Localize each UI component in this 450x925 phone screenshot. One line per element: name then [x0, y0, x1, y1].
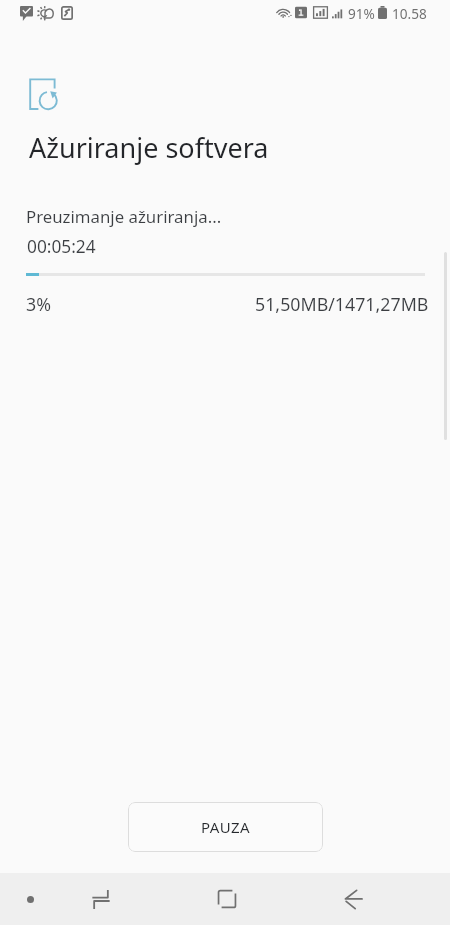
staticText: 10.58 — [392, 4, 427, 23]
staticText: Preuzimanje ažuriranja... — [26, 205, 222, 228]
button[interactable]: Back — [327, 873, 379, 925]
staticText: Ažuriranje softvera — [29, 129, 269, 166]
staticText: 91% — [348, 4, 375, 23]
button[interactable]: PAUZA — [128, 802, 323, 852]
staticText: 00:05:24 — [27, 235, 96, 259]
staticText: 51,50MB/1471,27MB — [255, 292, 429, 316]
staticText: PAUZA — [201, 817, 251, 837]
staticText: 3% — [26, 292, 51, 316]
button[interactable]: Home — [201, 873, 253, 925]
button[interactable]: Recent apps — [75, 873, 127, 925]
